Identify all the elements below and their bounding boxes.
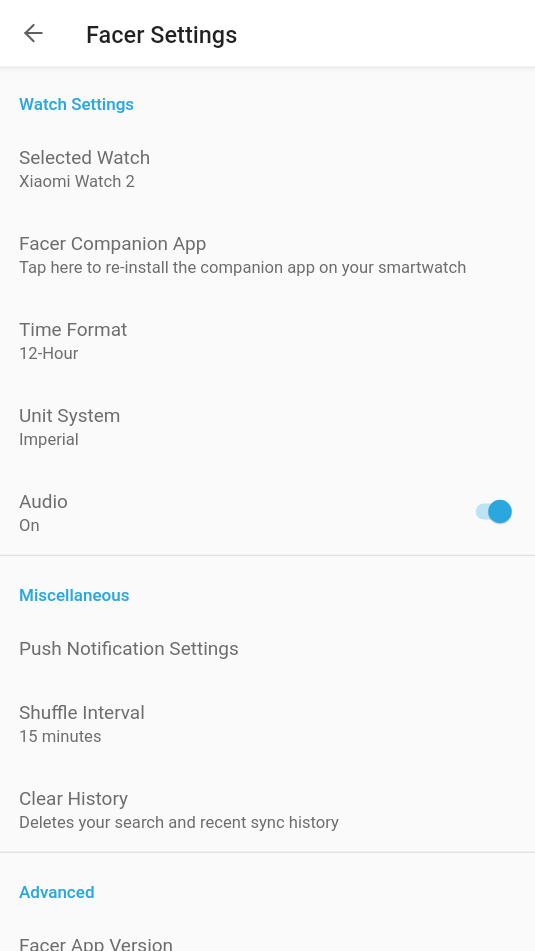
- staticText: 15 minutes: [19, 727, 102, 746]
- staticText: Shuffle Interval: [19, 701, 145, 723]
- staticText: Xiaomi Watch 2: [19, 172, 135, 191]
- staticText: Facer App Version: [19, 934, 174, 951]
- button[interactable]: Audio: [0, 469, 535, 555]
- staticText: Facer Companion App: [19, 232, 207, 254]
- staticText: On: [19, 516, 40, 535]
- button[interactable]: Push Notification Settings: [0, 616, 535, 680]
- staticText: Tap here to re-install the companion app…: [19, 258, 467, 277]
- staticText: Clear History: [19, 787, 128, 809]
- staticText: Selected Watch: [19, 146, 151, 168]
- staticText: Imperial: [19, 430, 79, 449]
- button[interactable]: Unit System: [0, 383, 535, 469]
- staticText: Unit System: [19, 404, 121, 426]
- staticText: Watch Settings: [19, 94, 135, 114]
- button[interactable]: Back: [9, 9, 57, 57]
- button[interactable]: Facer App Version: [0, 913, 535, 951]
- staticText: Deletes your search and recent sync hist…: [19, 813, 339, 832]
- staticText: Audio: [19, 490, 68, 512]
- staticText: Push Notification Settings: [19, 637, 239, 659]
- button[interactable]: Time Format: [0, 297, 535, 383]
- button[interactable]: Clear History: [0, 766, 535, 852]
- button[interactable]: Facer Companion App: [0, 211, 535, 297]
- button[interactable]: Shuffle Interval: [0, 680, 535, 766]
- staticText: Miscellaneous: [19, 585, 130, 605]
- staticText: 12-Hour: [19, 344, 79, 363]
- staticText: Facer Settings: [86, 21, 238, 49]
- button[interactable]: Selected Watch: [0, 125, 535, 211]
- staticText: Advanced: [19, 882, 95, 902]
- button[interactable]: Audio toggle: [466, 487, 522, 537]
- staticText: Time Format: [19, 318, 128, 340]
